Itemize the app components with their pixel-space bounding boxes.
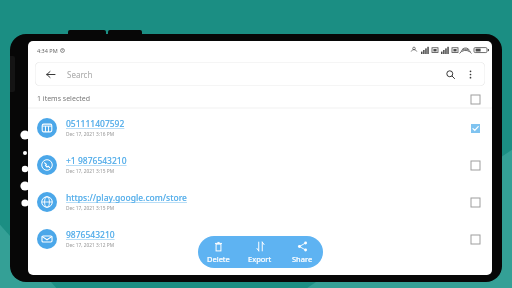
- button[interactable]: Select: [467, 231, 483, 247]
- staticText: https://play.google.com/store: [66, 192, 187, 204]
- button[interactable]: Select: [467, 91, 483, 107]
- button[interactable]: Selected: [467, 120, 483, 136]
- button[interactable]: Export: [239, 236, 281, 268]
- staticText: Search: [67, 69, 93, 80]
- staticText: 4:34 PM: [37, 47, 58, 54]
- staticText: Delete: [207, 254, 230, 264]
- button[interactable]: Delete: [198, 236, 239, 268]
- staticText: 1 items selected: [37, 94, 91, 104]
- button[interactable]: Back: [35, 62, 485, 86]
- button[interactable]: https://play.google.com/store: [28, 183, 492, 220]
- staticText: Dec 17, 2021 3:12 PM: [66, 242, 115, 249]
- staticText: Export: [248, 254, 272, 264]
- staticText: +1 9876543210: [66, 155, 127, 167]
- staticText: 9876543210: [66, 229, 115, 241]
- button[interactable]: Search: [443, 67, 457, 81]
- button[interactable]: 051111407592: [28, 109, 492, 146]
- staticText: Dec 17, 2021 3:15 PM: [66, 205, 115, 212]
- staticText: Dec 17, 2021 3:15 PM: [66, 168, 115, 175]
- button[interactable]: 9876543210: [28, 220, 492, 257]
- button[interactable]: Share: [281, 236, 323, 268]
- button[interactable]: More options: [463, 67, 477, 81]
- button[interactable]: +1 9876543210: [28, 146, 492, 183]
- button[interactable]: Back: [43, 67, 57, 81]
- button[interactable]: Select: [467, 157, 483, 173]
- staticText: Dec 17, 2021 3:16 PM: [66, 131, 115, 138]
- staticText: 051111407592: [66, 118, 125, 130]
- button[interactable]: Select: [467, 194, 483, 210]
- staticText: Share: [292, 254, 313, 264]
